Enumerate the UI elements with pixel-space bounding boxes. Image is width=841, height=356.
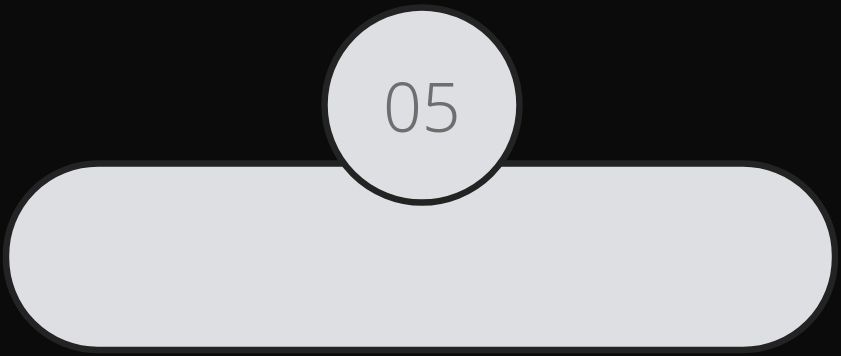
button[interactable]: Step 05 card [0,0,841,356]
